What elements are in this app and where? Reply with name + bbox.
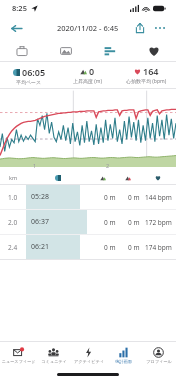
button[interactable]: 2.0 xyxy=(0,210,176,234)
staticText: 06:05 xyxy=(22,66,46,78)
staticText: 2.0 xyxy=(8,218,18,227)
staticText: 0 m xyxy=(104,218,116,227)
staticText: 0 m xyxy=(128,218,140,227)
staticText: 0 m xyxy=(104,243,116,252)
button[interactable]: 06:05 xyxy=(0,62,58,88)
staticText: 0 m xyxy=(128,243,140,252)
staticText: 0 xyxy=(89,65,95,77)
staticText: 1.0 xyxy=(8,193,18,202)
staticText: km xyxy=(9,174,18,181)
button[interactable]: 2.4 xyxy=(0,235,176,259)
staticText: 平均ペース xyxy=(16,79,42,85)
button[interactable]: Charts xyxy=(88,40,132,61)
button[interactable]: ニュースフィード xyxy=(0,342,36,368)
button[interactable]: Photos xyxy=(44,40,88,61)
staticText: 0 m xyxy=(104,193,116,202)
staticText: 2 xyxy=(106,162,110,169)
button[interactable]: 统計画面 xyxy=(106,342,141,368)
button[interactable]: プロフィール xyxy=(141,342,176,368)
staticText: 上昇高度 (m) xyxy=(73,78,102,85)
staticText: 164 xyxy=(143,65,159,77)
staticText: コミュニティ xyxy=(41,359,67,364)
button[interactable]: Activity summary xyxy=(0,40,44,61)
staticText: プロフィール xyxy=(146,359,172,364)
button[interactable]: 0 xyxy=(58,62,117,88)
staticText: 172 bpm xyxy=(145,218,172,227)
staticText: 2020/11/02 - 6:45 xyxy=(57,23,119,33)
staticText: 0 m xyxy=(128,193,140,202)
staticText: 06:37 xyxy=(31,217,49,227)
button[interactable]: アクティビティ xyxy=(71,342,106,368)
staticText: 2.4 xyxy=(8,243,18,252)
staticText: 05:28 xyxy=(31,192,49,202)
staticText: 06:21 xyxy=(31,242,49,252)
button[interactable]: コミュニティ xyxy=(36,342,71,368)
staticText: 8:25 xyxy=(12,3,27,13)
button[interactable]: 164 xyxy=(117,62,176,88)
staticText: 174 bpm xyxy=(145,243,172,252)
staticText: ニュースフィード xyxy=(1,359,36,364)
button[interactable]: Share xyxy=(130,18,150,38)
button[interactable]: Back xyxy=(6,18,26,38)
staticText: 1 xyxy=(33,162,37,169)
button[interactable]: Heart rate xyxy=(132,40,176,61)
staticText: 144 bpm xyxy=(145,193,172,202)
staticText: 统計画面 xyxy=(115,359,132,364)
staticText: アクティビティ xyxy=(74,359,104,364)
button[interactable]: More options xyxy=(150,18,170,38)
button[interactable]: 1.0 xyxy=(0,185,176,209)
staticText: 心拍数平均 (bpm) xyxy=(126,78,167,85)
